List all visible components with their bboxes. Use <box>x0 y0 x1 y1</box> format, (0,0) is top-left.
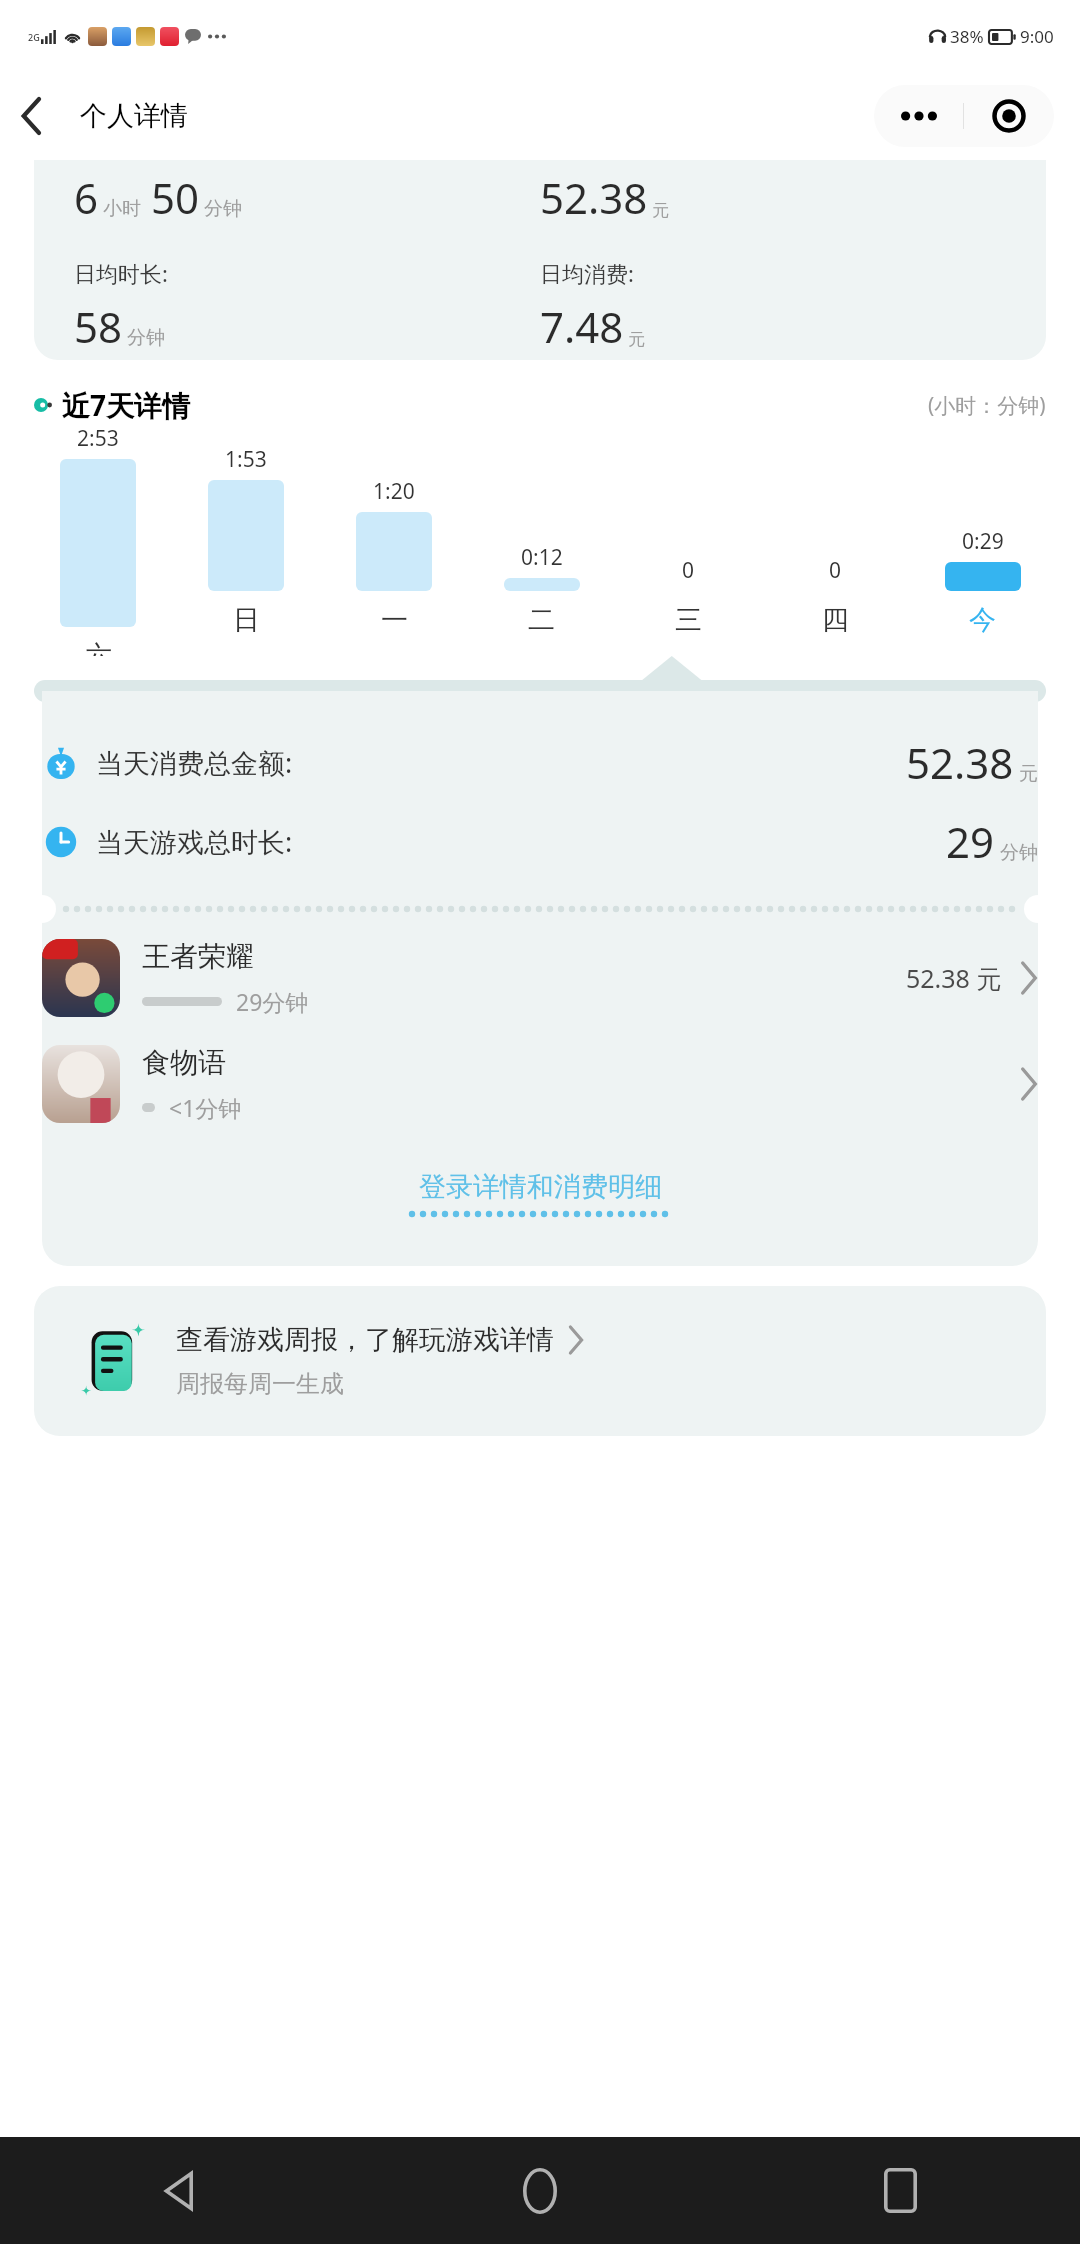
staticText: 2:53 <box>77 424 119 453</box>
staticText: 小时 <box>103 197 141 221</box>
staticText: 1:53 <box>225 445 267 474</box>
staticText: 52.38 元 <box>906 961 1002 995</box>
staticText: 查看游戏周报，了解玩游戏详情 <box>176 1323 554 1357</box>
staticText: 分钟 <box>204 197 242 221</box>
staticText: 元 <box>628 329 645 350</box>
button[interactable]: 0 <box>615 424 762 656</box>
staticText: 29分钟 <box>236 986 309 1017</box>
staticText: 四 <box>822 603 849 637</box>
button[interactable]: 0 <box>762 424 909 656</box>
staticText: 当天消费总金额: <box>96 744 293 781</box>
staticText: 1:20 <box>373 477 415 506</box>
staticText: 29 <box>946 813 995 870</box>
button[interactable]: 王者荣耀 <box>42 930 1038 1026</box>
staticText: 今 <box>969 603 996 637</box>
staticText: 52.38 <box>906 734 1014 791</box>
staticText: 六 <box>85 639 112 656</box>
staticText: 个人详情 <box>80 99 188 133</box>
staticText: 52.38 <box>540 169 648 226</box>
button[interactable]: 0:29 <box>909 424 1056 656</box>
staticText: 分钟 <box>127 326 165 350</box>
staticText: 元 <box>1019 762 1038 786</box>
staticText: 一 <box>381 603 408 637</box>
button[interactable]: 登录详情和消费明细 <box>42 1170 1038 1218</box>
staticText: 日均时长: <box>74 258 540 288</box>
button[interactable]: 1:53 <box>172 424 320 656</box>
staticText: 0 <box>682 556 695 585</box>
button[interactable]: 食物语 <box>42 1036 1038 1132</box>
staticText: 元 <box>652 200 669 221</box>
staticText: 7.48 <box>540 298 624 355</box>
staticText: 50 <box>151 169 200 226</box>
button[interactable]: Close <box>964 85 1054 147</box>
button[interactable]: 1:20 <box>320 424 468 656</box>
staticText: 二 <box>528 603 555 637</box>
staticText: 分钟 <box>1000 841 1038 865</box>
staticText: 0:12 <box>521 543 563 572</box>
staticText: <1分钟 <box>169 1092 242 1123</box>
staticText: 三 <box>675 603 702 637</box>
staticText: 58 <box>74 298 123 355</box>
button[interactable]: Back <box>0 2137 360 2244</box>
staticText: 6 <box>74 169 99 226</box>
staticText: 周报每周一生成 <box>176 1369 344 1399</box>
staticText: (小时：分钟) <box>928 391 1046 420</box>
button[interactable]: Recent apps <box>720 2137 1080 2244</box>
staticText: 登录详情和消费明细 <box>419 1170 662 1204</box>
button[interactable]: 查看游戏周报，了解玩游戏详情 <box>34 1286 1046 1436</box>
button[interactable]: 0:12 <box>468 424 615 656</box>
staticText: 近7天详情 <box>62 386 191 424</box>
staticText: 0:29 <box>962 527 1004 556</box>
button[interactable]: 2:53 <box>24 424 172 656</box>
staticText: 日均消费: <box>540 258 1006 288</box>
staticText: 0 <box>829 556 842 585</box>
button[interactable]: 当天游戏总时长: <box>42 813 1038 870</box>
staticText: 2G <box>28 31 40 43</box>
button[interactable]: Back <box>0 84 64 148</box>
staticText: 王者荣耀 <box>142 939 254 974</box>
staticText: 食物语 <box>142 1045 226 1080</box>
button[interactable]: 当天消费总金额: <box>42 734 1038 791</box>
staticText: 日 <box>233 603 260 637</box>
button[interactable]: 6 <box>34 160 1046 360</box>
button[interactable]: More options <box>874 85 963 147</box>
staticText: 当天游戏总时长: <box>96 823 293 860</box>
staticText: 9:00 <box>1020 25 1054 48</box>
staticText: 38% <box>950 25 984 48</box>
button[interactable]: Home <box>360 2137 720 2244</box>
